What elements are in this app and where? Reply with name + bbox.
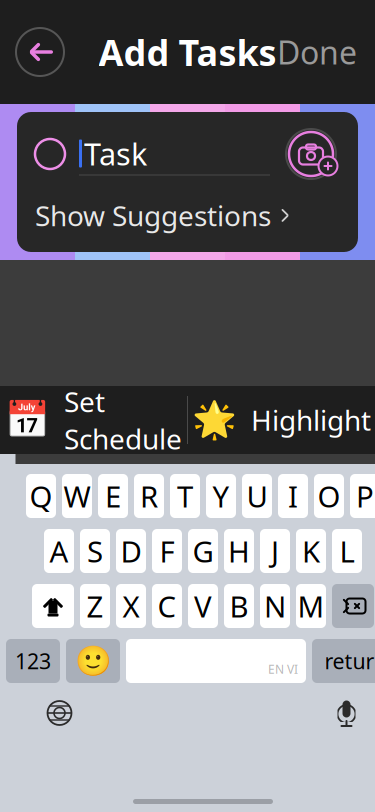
button[interactable]: R <box>134 474 164 518</box>
staticText: Highlight <box>251 401 371 439</box>
staticText: I <box>288 476 298 515</box>
staticText: 📅 <box>5 399 50 440</box>
staticText: T <box>177 476 193 515</box>
staticText: Done <box>277 31 357 73</box>
staticText: W <box>63 476 90 515</box>
button[interactable]: N <box>260 584 290 628</box>
staticText: E <box>105 476 121 515</box>
button[interactable]: Mark complete <box>35 139 69 169</box>
staticText: G <box>192 531 213 570</box>
button[interactable]: E <box>98 474 128 518</box>
staticText: Task <box>84 133 147 174</box>
staticText: 🙂 <box>74 644 111 678</box>
staticText: R <box>140 476 158 515</box>
button[interactable]: return <box>312 639 375 683</box>
button[interactable]: 123 <box>6 639 60 683</box>
button[interactable]: Show Suggestions <box>17 197 358 252</box>
button[interactable]: U <box>242 474 272 518</box>
staticText: EN VI <box>268 661 298 677</box>
staticText: A <box>49 531 68 570</box>
button[interactable]: B <box>224 584 254 628</box>
button[interactable]: Q <box>26 474 56 518</box>
staticText: M <box>297 586 324 625</box>
button[interactable]: 📅 <box>0 386 187 454</box>
staticText: Add Tasks <box>98 28 276 76</box>
staticText: H <box>228 531 250 570</box>
staticText: Q <box>29 476 52 515</box>
staticText: Y <box>212 476 229 515</box>
button[interactable]: D <box>116 529 146 573</box>
button[interactable]: M <box>296 584 326 628</box>
button[interactable]: Change keyboard <box>37 693 81 733</box>
staticText: V <box>194 586 212 625</box>
button[interactable]: 🌟 <box>188 386 375 454</box>
button[interactable]: L <box>332 529 362 573</box>
button[interactable]: Back <box>12 24 68 80</box>
button[interactable]: Dictation <box>324 693 368 733</box>
button[interactable]: Done <box>271 28 363 76</box>
staticText: X <box>122 586 139 625</box>
staticText: Set Schedule <box>64 383 182 457</box>
staticText: F <box>159 531 174 570</box>
button[interactable]: S <box>80 529 110 573</box>
button[interactable]: F <box>152 529 182 573</box>
staticText: L <box>339 531 354 570</box>
button[interactable]: C <box>152 584 182 628</box>
button[interactable]: Space <box>126 639 306 683</box>
staticText: B <box>229 586 248 625</box>
button[interactable]: J <box>260 529 290 573</box>
button[interactable]: Z <box>80 584 110 628</box>
button[interactable]: Emoji <box>66 639 120 683</box>
button[interactable]: Add photo <box>282 126 340 182</box>
staticText: P <box>356 476 374 515</box>
button[interactable]: Y <box>206 474 236 518</box>
button[interactable]: P <box>350 474 375 518</box>
button[interactable]: G <box>188 529 218 573</box>
staticText: D <box>120 531 141 570</box>
button[interactable]: I <box>278 474 308 518</box>
staticText: Show Suggestions <box>35 197 271 234</box>
staticText: O <box>317 476 340 515</box>
staticText: C <box>157 586 176 625</box>
button[interactable]: K <box>296 529 326 573</box>
staticText: N <box>264 586 286 625</box>
button[interactable]: H <box>224 529 254 573</box>
button[interactable]: W <box>62 474 92 518</box>
staticText: K <box>302 531 320 570</box>
button[interactable]: V <box>188 584 218 628</box>
staticText: 123 <box>15 647 51 675</box>
staticText: U <box>246 476 267 515</box>
button[interactable]: Delete <box>332 584 374 628</box>
button[interactable]: Shift <box>32 584 74 628</box>
staticText: 🌟 <box>192 399 237 440</box>
staticText: S <box>87 531 103 570</box>
button[interactable]: O <box>314 474 344 518</box>
staticText: J <box>271 531 279 570</box>
staticText: return <box>324 647 375 675</box>
staticText: Z <box>86 586 103 625</box>
button[interactable]: T <box>170 474 200 518</box>
button[interactable]: A <box>44 529 74 573</box>
button[interactable]: X <box>116 584 146 628</box>
